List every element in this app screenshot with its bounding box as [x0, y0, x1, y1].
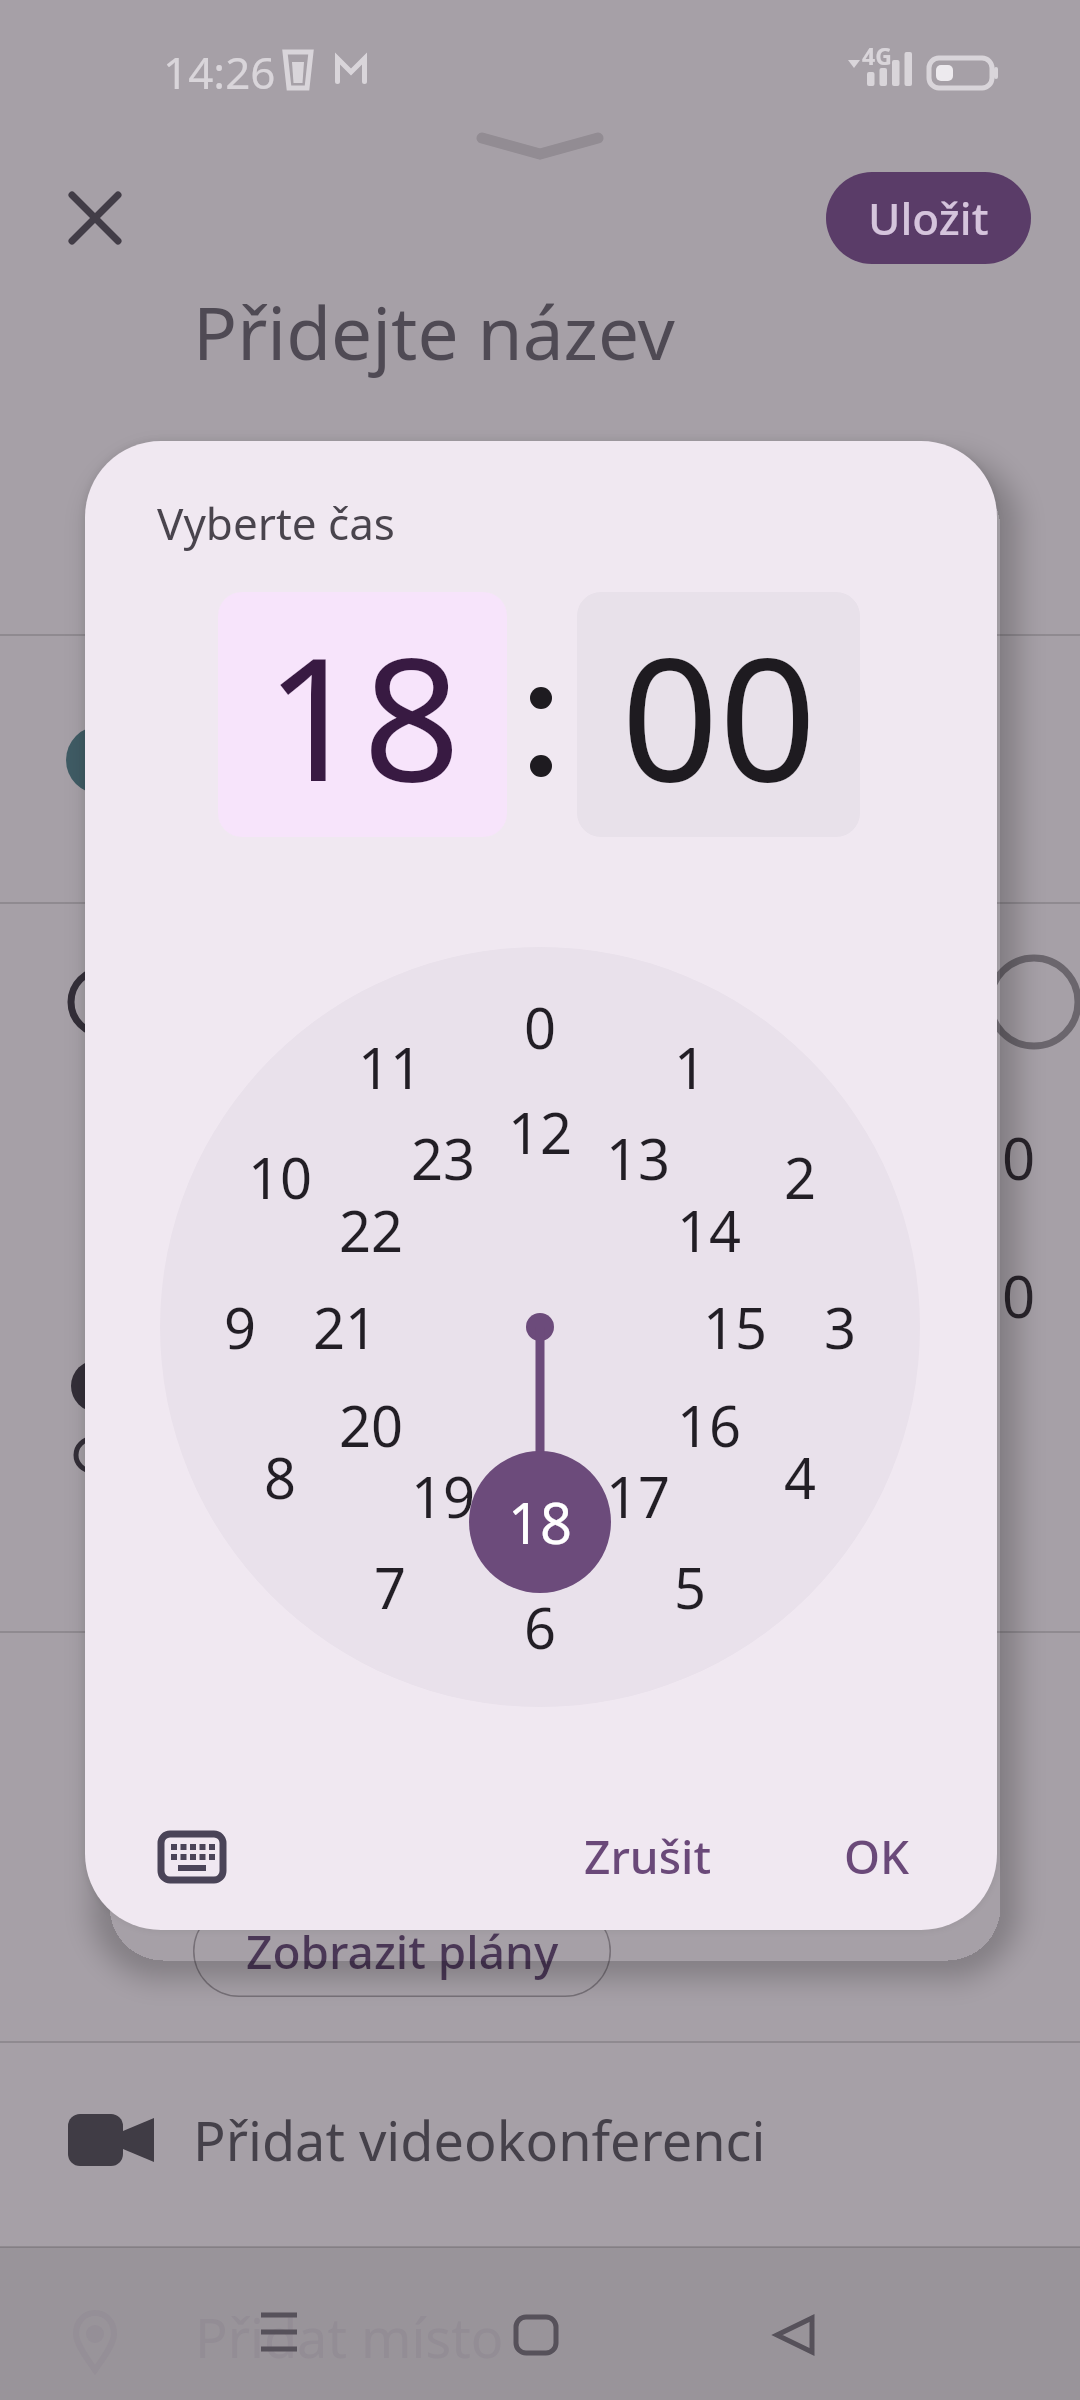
staticText: 12 — [508, 1094, 573, 1170]
button[interactable]: 9 — [180, 1267, 300, 1387]
staticText: Zobrazit plány — [246, 1920, 559, 1983]
button[interactable]: Zrušit — [553, 1806, 743, 1906]
staticText: 7 — [374, 1549, 407, 1625]
button[interactable]: 0 — [480, 967, 600, 1087]
button[interactable]: 5 — [630, 1527, 750, 1647]
button[interactable]: 17 — [578, 1436, 698, 1556]
button[interactable]: 23 — [383, 1098, 503, 1218]
button[interactable]: 1 — [630, 1007, 750, 1127]
staticText: 4G — [862, 40, 892, 71]
staticText: Přidejte název — [193, 282, 675, 381]
button[interactable] — [147, 1815, 237, 1899]
staticText: 18 — [265, 598, 461, 831]
button[interactable]: 10 — [220, 1117, 340, 1237]
button[interactable]: 7 — [330, 1527, 450, 1647]
staticText: 9 — [224, 1289, 257, 1365]
button[interactable]: Přidat místo — [0, 2280, 1080, 2400]
staticText: 14 — [677, 1192, 742, 1268]
button[interactable]: 6 — [480, 1567, 600, 1687]
button[interactable]: 13 — [578, 1098, 698, 1218]
button[interactable]: 22 — [311, 1170, 431, 1290]
button[interactable] — [225, 2300, 335, 2380]
staticText: OK — [844, 1825, 910, 1888]
button[interactable] — [740, 2300, 850, 2380]
staticText: 4 — [784, 1439, 817, 1515]
staticText: 23 — [411, 1120, 476, 1196]
staticText: 13 — [606, 1120, 671, 1196]
button[interactable]: Zobrazit plány — [193, 1905, 611, 1997]
button[interactable]: 18 — [480, 1462, 600, 1582]
staticText: 18 — [508, 1484, 573, 1560]
button[interactable]: 11 — [330, 1007, 450, 1127]
staticText: 22 — [339, 1192, 404, 1268]
button[interactable]: 18 — [218, 592, 507, 837]
staticText: 0 — [524, 989, 557, 1065]
staticText: 1 — [674, 1029, 707, 1105]
staticText: 0 — [1002, 1256, 1036, 1335]
staticText: 0 — [1002, 1118, 1036, 1197]
button[interactable]: 16 — [649, 1365, 769, 1485]
staticText: Vyberte čas — [157, 493, 395, 553]
staticText: 10 — [248, 1139, 313, 1215]
staticText: 16 — [677, 1387, 742, 1463]
staticText: 21 — [313, 1289, 378, 1365]
button[interactable] — [68, 191, 122, 245]
staticText: 8 — [264, 1439, 297, 1515]
staticText: 19 — [411, 1458, 476, 1534]
staticText: 20 — [339, 1387, 404, 1463]
staticText: 00 — [621, 598, 817, 831]
button[interactable]: 14 — [649, 1170, 769, 1290]
staticText: 2 — [784, 1139, 817, 1215]
button[interactable]: 12 — [480, 1072, 600, 1192]
staticText: 6 — [524, 1589, 557, 1665]
staticText: 15 — [703, 1289, 768, 1365]
staticText: Přidat videokonferenci — [193, 2103, 766, 2177]
button[interactable]: 15 — [675, 1267, 795, 1387]
staticText: 3 — [824, 1289, 857, 1365]
staticText: 5 — [674, 1549, 707, 1625]
staticText: 11 — [358, 1029, 423, 1105]
staticText: 17 — [606, 1458, 671, 1534]
button[interactable]: Uložit — [826, 172, 1031, 264]
button[interactable]: Přidat videokonferenci — [0, 2100, 1080, 2180]
button[interactable]: 3 — [780, 1267, 900, 1387]
button[interactable]: 21 — [285, 1267, 405, 1387]
button[interactable]: 00 — [577, 592, 860, 837]
staticText: Přidat místo — [195, 2300, 504, 2374]
button[interactable]: 8 — [220, 1417, 340, 1537]
staticText: 14:26 — [163, 42, 276, 102]
button[interactable]: 20 — [311, 1365, 431, 1485]
button[interactable]: 4 — [740, 1417, 860, 1537]
button[interactable]: 19 — [383, 1436, 503, 1556]
button[interactable] — [482, 2300, 592, 2380]
button[interactable]: 2 — [740, 1117, 860, 1237]
button[interactable]: OK — [797, 1806, 957, 1906]
staticText: Zrušit — [584, 1825, 712, 1888]
staticText: Uložit — [868, 188, 989, 248]
